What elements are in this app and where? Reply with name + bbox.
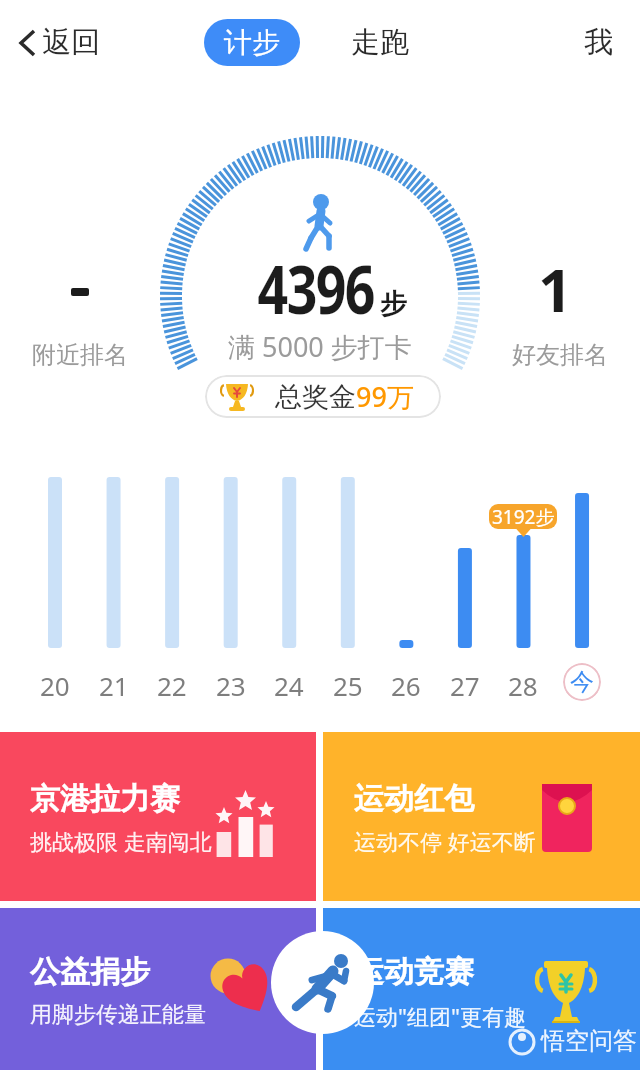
staticText: 满 5000 步打卡 <box>228 328 412 365</box>
staticText: 步 <box>380 287 407 321</box>
staticText: 京港拉力赛 <box>30 780 180 818</box>
button[interactable]: 我 <box>570 19 626 66</box>
staticText: 4396 <box>258 242 374 333</box>
staticText: 走跑 <box>351 24 409 61</box>
staticText: 悟空问答 <box>541 1026 637 1056</box>
staticText: 28 <box>508 668 538 703</box>
button[interactable]: 计步 <box>204 19 300 66</box>
staticText: 运动不停 好运不断 <box>354 826 536 856</box>
staticText: 25 <box>333 668 363 703</box>
button[interactable]: 总奖金 <box>205 375 441 418</box>
staticText: 运动红包 <box>354 780 474 818</box>
staticText: 计步 <box>224 25 280 60</box>
staticText: 今 <box>570 667 594 697</box>
staticText: 1 <box>538 248 573 330</box>
staticText: 我 <box>584 24 613 61</box>
staticText: 公益捐步 <box>30 953 150 991</box>
button[interactable]: 京港拉力赛 <box>0 732 316 901</box>
staticText: 运动竞赛 <box>354 953 474 991</box>
staticText: 3192步 <box>492 504 555 529</box>
staticText: 挑战极限 走南闯北 <box>30 826 212 856</box>
button[interactable]: 走跑 <box>340 19 420 66</box>
button[interactable]: 公益捐步 <box>0 908 316 1070</box>
staticText: 附近排名 <box>32 340 128 370</box>
button[interactable]: 今 <box>563 663 601 701</box>
staticText: 22 <box>157 668 187 703</box>
staticText: 用脚步传递正能量 <box>30 1001 206 1029</box>
staticText: 27 <box>450 668 480 703</box>
staticText: 总奖金 <box>275 380 356 414</box>
staticText: 运动"组团"更有趣 <box>354 1001 526 1031</box>
staticText: 99万 <box>356 378 414 415</box>
staticText: 24 <box>274 668 304 703</box>
staticText: 21 <box>99 668 129 703</box>
button[interactable]: 运动红包 <box>323 732 640 901</box>
button[interactable]: 返回 <box>12 20 104 65</box>
staticText: 23 <box>216 668 246 703</box>
staticText: 20 <box>40 668 70 703</box>
button[interactable] <box>271 931 374 1034</box>
staticText: 26 <box>391 668 421 703</box>
staticText: 返回 <box>42 24 100 61</box>
button[interactable]: 运动竞赛 <box>323 908 640 1070</box>
staticText: 好友排名 <box>512 340 608 370</box>
